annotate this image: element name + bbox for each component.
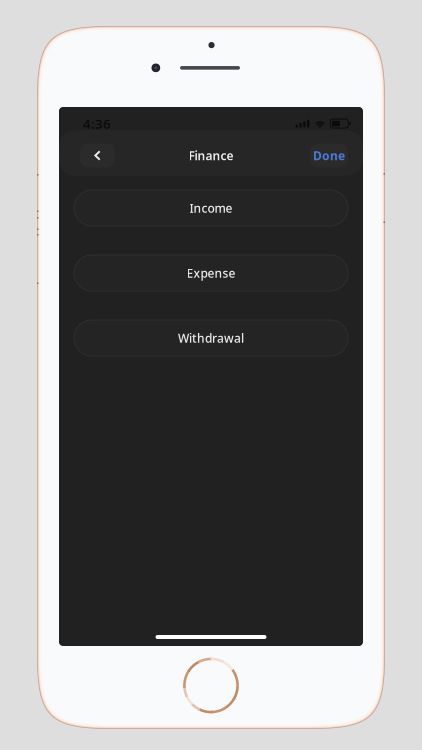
staticText: 4:36 xyxy=(83,115,111,132)
staticText: Withdrawal xyxy=(178,330,244,346)
button[interactable]: Withdrawal xyxy=(74,320,348,356)
button[interactable]: Done xyxy=(310,143,348,167)
button[interactable]: Income xyxy=(74,190,348,226)
staticText: Finance xyxy=(188,147,233,163)
staticText: Expense xyxy=(186,265,235,281)
staticText: Income xyxy=(189,200,232,216)
button[interactable]: Expense xyxy=(74,255,348,291)
button[interactable]: Back xyxy=(80,143,115,167)
staticText: Done xyxy=(313,147,345,163)
